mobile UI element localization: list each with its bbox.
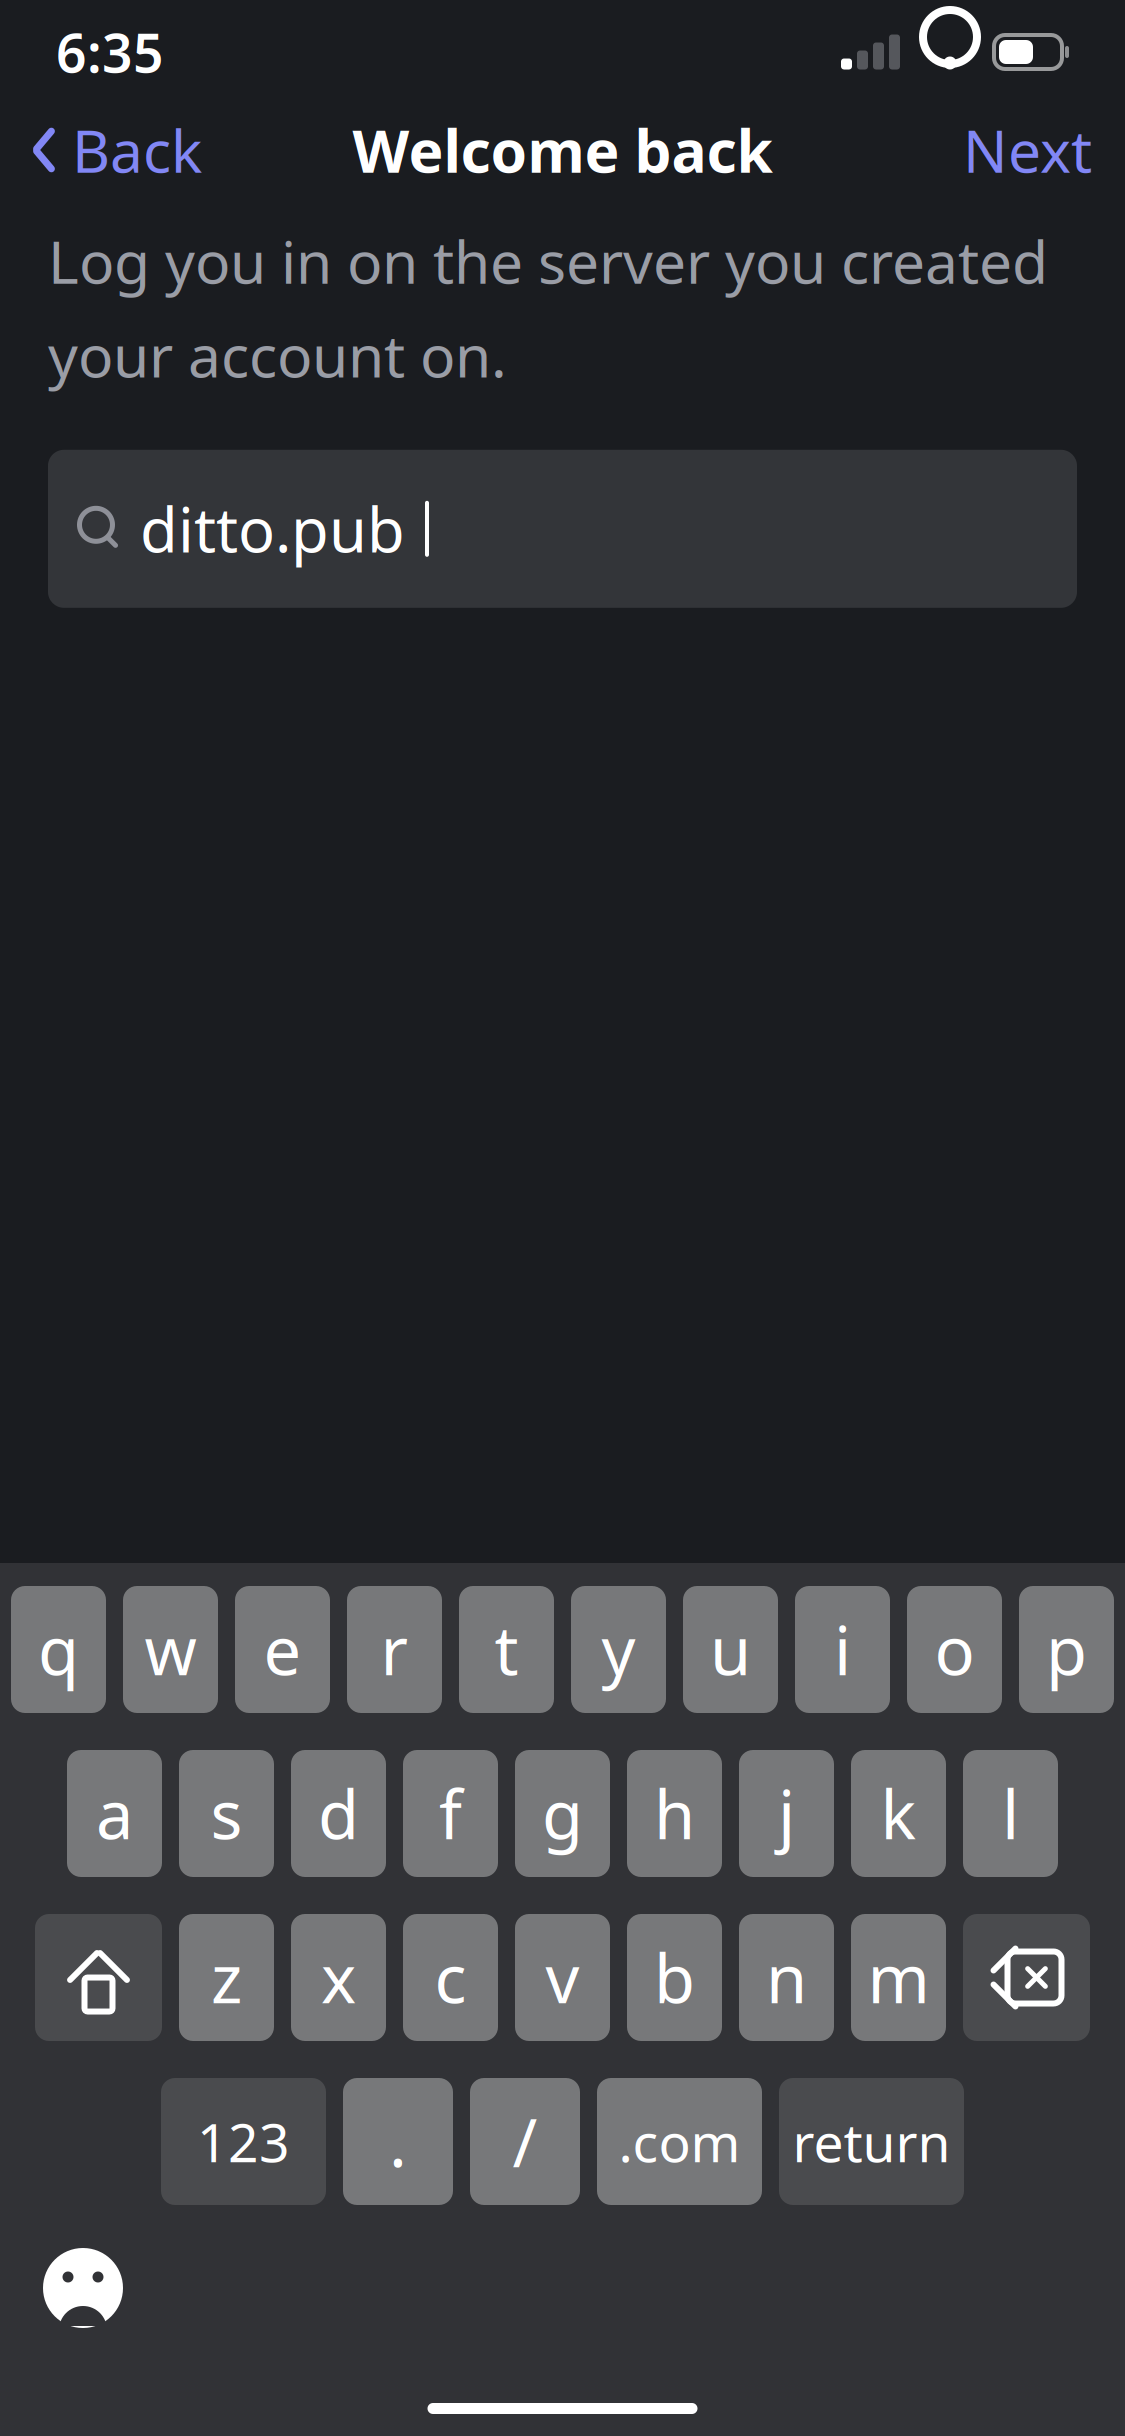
- staticText: g: [542, 1769, 583, 1858]
- staticText: i: [834, 1605, 851, 1694]
- button[interactable]: /: [470, 2078, 580, 2205]
- staticText: n: [766, 1933, 807, 2022]
- staticText: a: [96, 1769, 133, 1858]
- button[interactable]: d: [291, 1750, 386, 1877]
- staticText: u: [710, 1605, 751, 1694]
- staticText: ditto.pub: [140, 488, 405, 569]
- staticText: Back: [72, 111, 202, 189]
- staticText: j: [778, 1769, 795, 1858]
- button[interactable]: Shift: [35, 1914, 162, 2041]
- button[interactable]: h: [627, 1750, 722, 1877]
- button[interactable]: z: [179, 1914, 274, 2041]
- button[interactable]: n: [739, 1914, 834, 2041]
- staticText: d: [318, 1769, 359, 1858]
- button[interactable]: Emoji: [28, 2233, 138, 2343]
- button[interactable]: i: [795, 1586, 890, 1713]
- staticText: .com: [618, 2106, 740, 2177]
- staticText: l: [1002, 1769, 1019, 1858]
- button[interactable]: x: [291, 1914, 386, 2041]
- button[interactable]: y: [571, 1586, 666, 1713]
- button[interactable]: ditto.pub: [48, 450, 1077, 608]
- staticText: q: [38, 1605, 79, 1694]
- staticText: y: [601, 1605, 635, 1694]
- staticText: Log you in on the server you created you…: [48, 222, 1048, 394]
- staticText: o: [934, 1605, 974, 1694]
- button[interactable]: f: [403, 1750, 498, 1877]
- button[interactable]: p: [1019, 1586, 1114, 1713]
- button[interactable]: 123: [161, 2078, 326, 2205]
- button[interactable]: l: [963, 1750, 1058, 1877]
- button[interactable]: .: [343, 2078, 453, 2205]
- button[interactable]: m: [851, 1914, 946, 2041]
- staticText: z: [211, 1933, 242, 2022]
- staticText: b: [654, 1933, 695, 2022]
- staticText: f: [439, 1769, 462, 1858]
- staticText: s: [210, 1769, 242, 1858]
- button[interactable]: .com: [597, 2078, 762, 2205]
- staticText: 6:35: [56, 17, 164, 87]
- staticText: w: [144, 1605, 196, 1694]
- button[interactable]: return: [779, 2078, 964, 2205]
- staticText: 123: [197, 2106, 290, 2177]
- button[interactable]: a: [67, 1750, 162, 1877]
- staticText: k: [880, 1769, 916, 1858]
- button[interactable]: Next: [963, 97, 1125, 203]
- button[interactable]: q: [11, 1586, 106, 1713]
- staticText: Welcome back: [352, 111, 772, 189]
- button[interactable]: g: [515, 1750, 610, 1877]
- button[interactable]: Delete: [963, 1914, 1090, 2041]
- button[interactable]: r: [347, 1586, 442, 1713]
- button[interactable]: u: [683, 1586, 778, 1713]
- button[interactable]: o: [907, 1586, 1002, 1713]
- staticText: h: [654, 1769, 695, 1858]
- staticText: t: [494, 1605, 518, 1694]
- button[interactable]: c: [403, 1914, 498, 2041]
- button[interactable]: b: [627, 1914, 722, 2041]
- button[interactable]: j: [739, 1750, 834, 1877]
- staticText: Next: [963, 111, 1092, 189]
- button[interactable]: k: [851, 1750, 946, 1877]
- staticText: return: [792, 2106, 950, 2177]
- button[interactable]: Back: [0, 97, 202, 203]
- staticText: c: [434, 1933, 466, 2022]
- button[interactable]: e: [235, 1586, 330, 1713]
- button[interactable]: w: [123, 1586, 218, 1713]
- staticText: m: [867, 1933, 929, 2022]
- staticText: e: [263, 1605, 301, 1694]
- button[interactable]: t: [459, 1586, 554, 1713]
- staticText: x: [321, 1933, 356, 2022]
- staticText: r: [380, 1605, 408, 1694]
- staticText: .: [389, 2097, 407, 2186]
- button[interactable]: s: [179, 1750, 274, 1877]
- button[interactable]: v: [515, 1914, 610, 2041]
- staticText: p: [1046, 1605, 1087, 1694]
- staticText: /: [512, 2097, 537, 2186]
- staticText: v: [545, 1933, 579, 2022]
